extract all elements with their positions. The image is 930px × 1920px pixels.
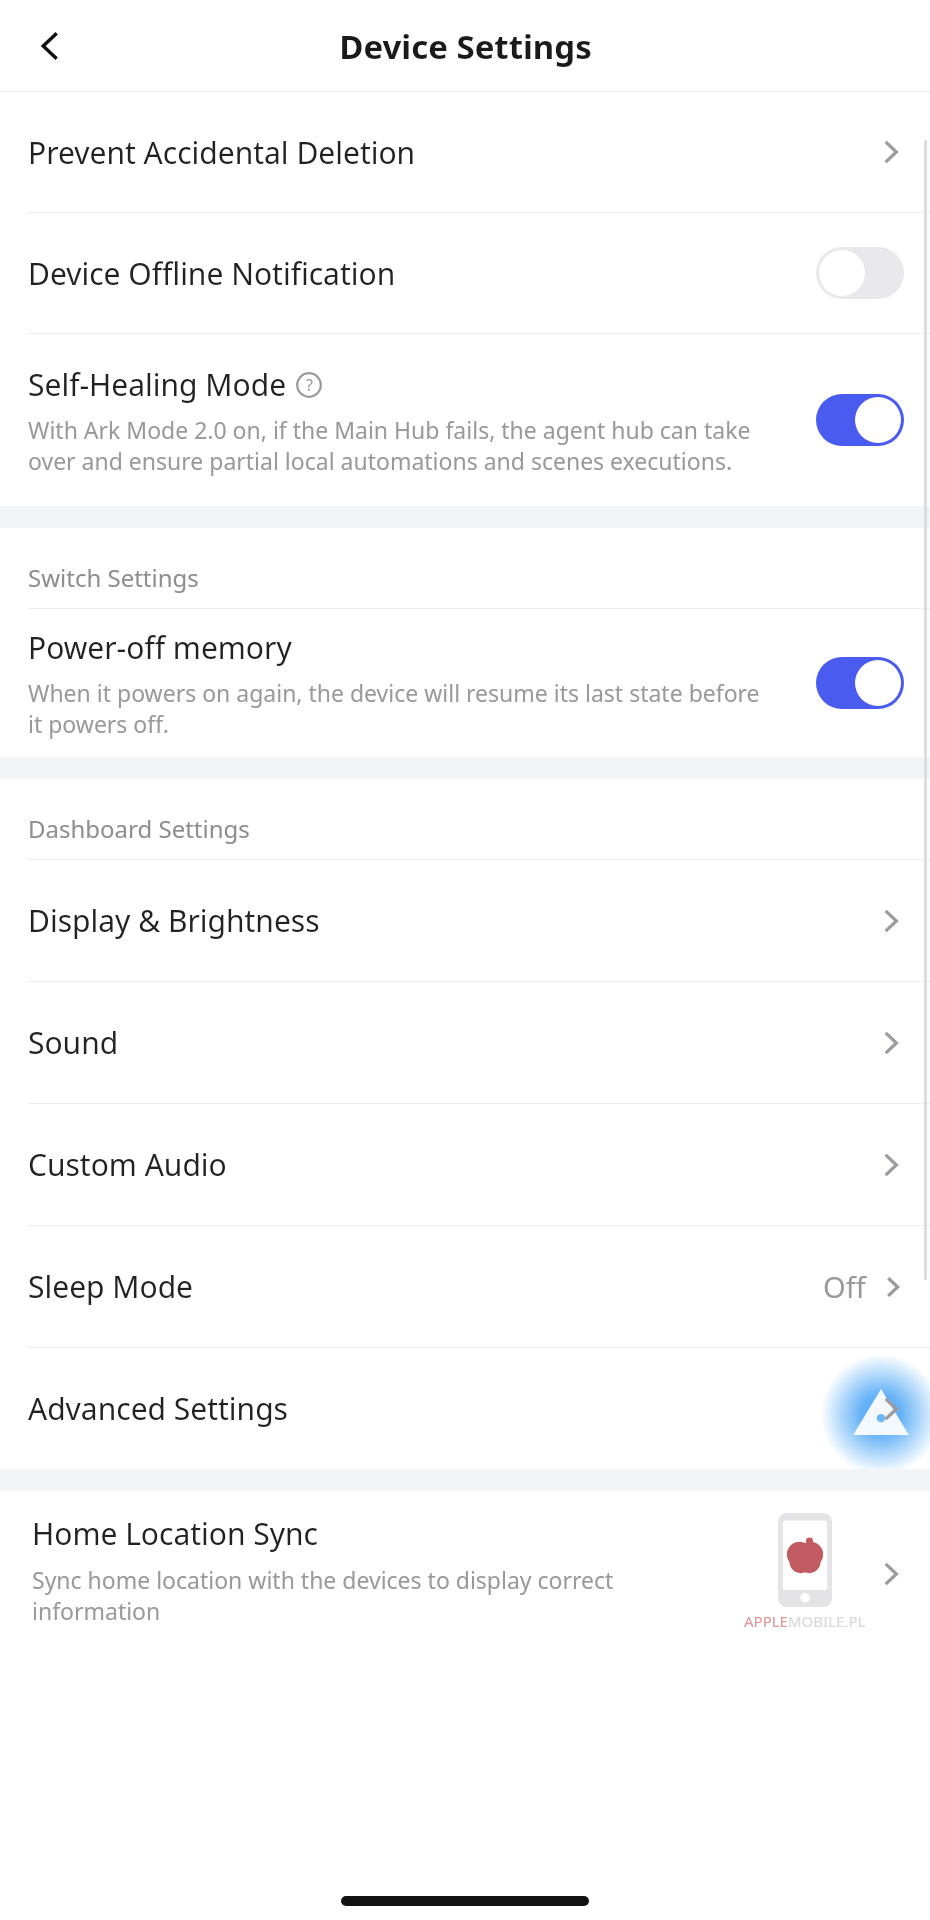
- button[interactable]: Toggle off: [816, 247, 904, 299]
- staticText: When it powers on again, the device will…: [28, 677, 766, 740]
- staticText: Prevent Accidental Deletion: [28, 132, 876, 173]
- staticText: Dashboard Settings: [28, 812, 250, 845]
- staticText: Sound: [28, 1022, 876, 1063]
- button[interactable]: Custom Audio: [0, 1104, 930, 1225]
- staticText: ?: [306, 374, 313, 396]
- button[interactable]: Power-off memory: [0, 609, 930, 757]
- staticText: APPLE: [744, 1611, 788, 1631]
- button[interactable]: Display & Brightness: [0, 860, 930, 981]
- button[interactable]: Sound: [0, 982, 930, 1103]
- staticText: With Ark Mode 2.0 on, if the Main Hub fa…: [28, 414, 772, 477]
- staticText: Device Settings: [339, 24, 592, 69]
- staticText: Off: [823, 1267, 866, 1306]
- button[interactable]: Toggle on: [816, 657, 904, 709]
- staticText: Sleep Mode: [28, 1266, 823, 1307]
- staticText: Device Offline Notification: [28, 253, 816, 294]
- staticText: Power-off memory: [28, 627, 292, 668]
- button[interactable]: Home Location Sync: [0, 1491, 930, 1651]
- staticText: Self-Healing Mode: [28, 364, 287, 405]
- staticText: MOBILE.PL: [788, 1611, 866, 1631]
- button[interactable]: Back: [18, 14, 82, 78]
- button[interactable]: Device Offline Notification: [0, 213, 930, 333]
- button[interactable]: Self-Healing Mode: [0, 334, 930, 506]
- button[interactable]: Toggle on: [816, 394, 904, 446]
- staticText: Custom Audio: [28, 1144, 876, 1185]
- button[interactable]: Sleep Mode: [0, 1226, 930, 1347]
- staticText: Display & Brightness: [28, 900, 876, 941]
- staticText: Home Location Sync: [32, 1513, 319, 1554]
- staticText: Switch Settings: [28, 561, 199, 594]
- staticText: Advanced Settings: [28, 1388, 876, 1429]
- staticText: Sync home location with the devices to d…: [32, 1564, 728, 1627]
- button[interactable]: Advanced Settings: [0, 1348, 930, 1469]
- button[interactable]: Prevent Accidental Deletion: [0, 92, 930, 212]
